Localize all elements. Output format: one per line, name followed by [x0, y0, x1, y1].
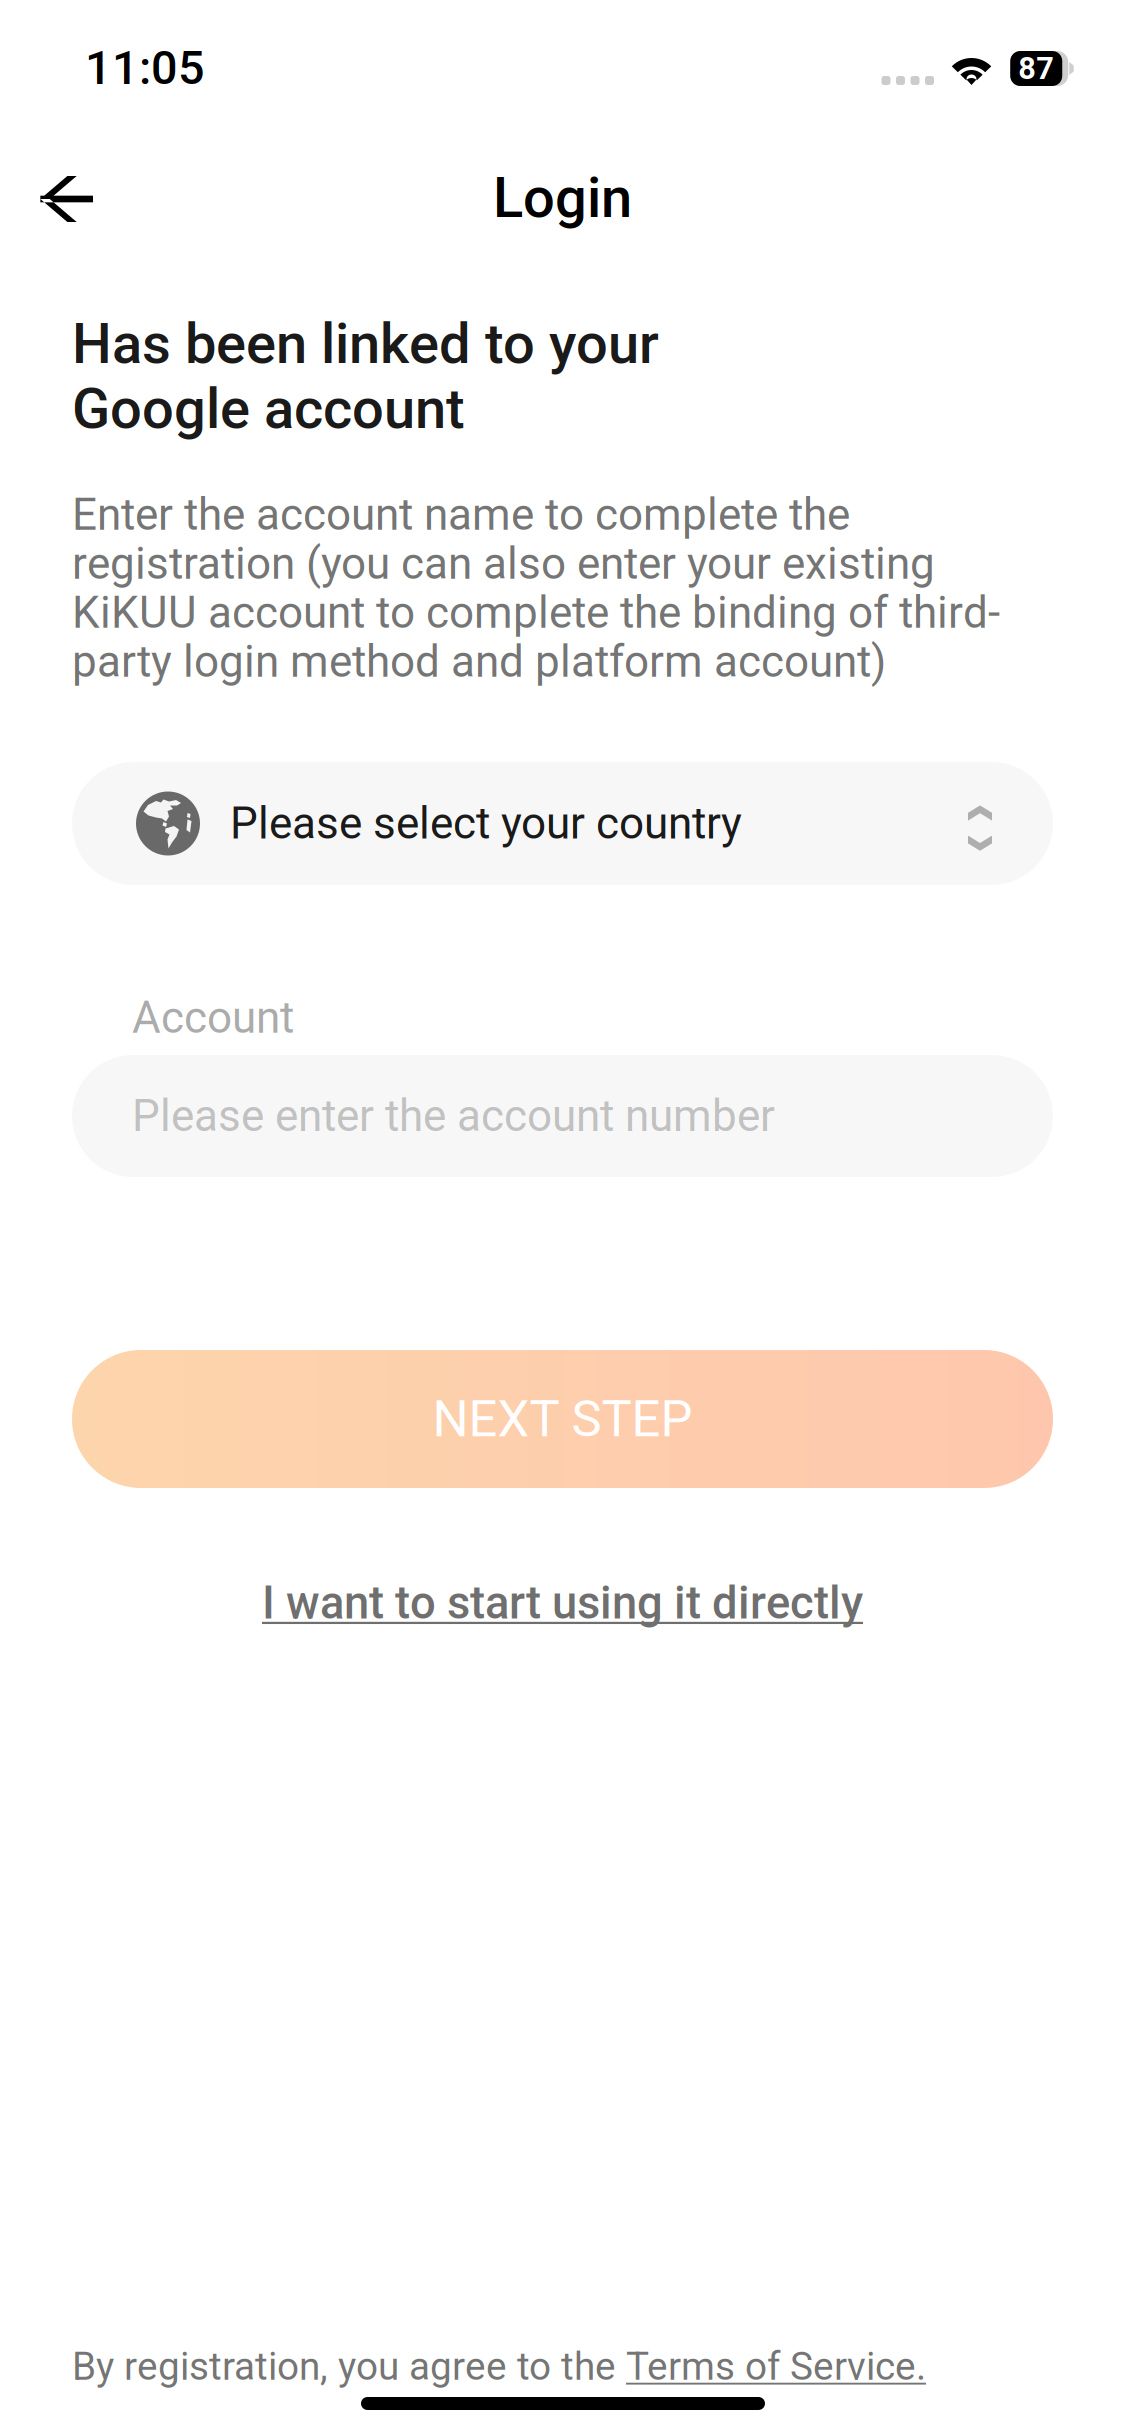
button[interactable]: Please select your country — [72, 762, 1053, 885]
staticText: By registration, you agree to the — [72, 2344, 626, 2389]
button[interactable]: Terms of Service. — [626, 2344, 926, 2389]
staticText: 11:05 — [85, 41, 205, 95]
staticText: Google account — [72, 376, 465, 442]
staticText: registration (you can also enter your ex… — [72, 538, 935, 590]
staticText: Enter the account name to complete the — [72, 489, 850, 541]
button[interactable]: I want to start using it directly — [0, 1568, 1125, 1638]
staticText: Please select your country — [230, 798, 742, 849]
button[interactable]: NEXT STEP — [72, 1350, 1053, 1488]
staticText: I want to start using it directly — [262, 1576, 863, 1629]
staticText: Account — [132, 992, 294, 1044]
staticText: party login method and platform account) — [72, 636, 886, 688]
staticText: Login — [493, 165, 632, 231]
staticText: Please enter the account number — [132, 1090, 775, 1142]
staticText: Has been linked to your — [72, 311, 659, 377]
staticText: 87 — [1018, 50, 1054, 86]
button[interactable]: Back — [21, 151, 117, 247]
staticText: KiKUU account to complete the binding of… — [72, 587, 1000, 639]
staticText: NEXT STEP — [432, 1389, 692, 1449]
staticText: Terms of Service. — [626, 2344, 926, 2389]
